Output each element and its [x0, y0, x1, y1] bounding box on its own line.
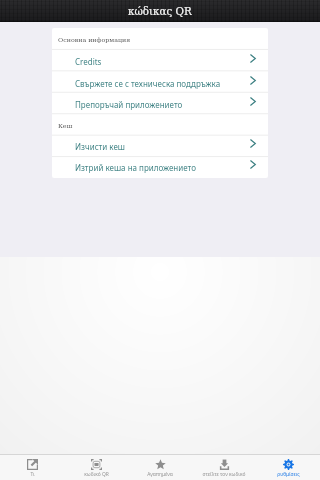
staticText: Основна информация — [58, 36, 131, 43]
staticText: Кеш — [58, 122, 73, 129]
button[interactable]: Свържете се с техническа поддръжка — [52, 72, 268, 94]
button[interactable]: Favourites — [128, 455, 192, 480]
staticText: κώδικας QR — [128, 5, 192, 17]
button[interactable]: Share — [0, 455, 64, 480]
staticText: Αγαπημένα — [147, 471, 173, 478]
button[interactable]: Settings — [256, 455, 320, 480]
staticText: Препоръчай приложението — [75, 99, 183, 110]
staticText: κωδικό QR — [84, 471, 109, 478]
staticText: Credits — [75, 56, 102, 67]
button[interactable]: Изтрий кеша на приложението — [52, 157, 268, 178]
button[interactable]: Credits — [52, 50, 268, 72]
button[interactable]: QR code — [64, 455, 128, 480]
button[interactable]: Изчисти кеш — [52, 136, 268, 157]
staticText: Τι — [30, 471, 35, 478]
staticText: στείλτε τον κωδικό — [202, 471, 246, 478]
staticText: ρυθμίσεις — [277, 471, 300, 478]
staticText: Изтрий кеша на приложението — [75, 162, 196, 173]
staticText: Свържете се с техническа поддръжка — [75, 78, 221, 89]
staticText: Изчисти кеш — [75, 141, 125, 152]
button[interactable]: Препоръчай приложението — [52, 94, 268, 115]
button[interactable]: Send code — [192, 455, 256, 480]
